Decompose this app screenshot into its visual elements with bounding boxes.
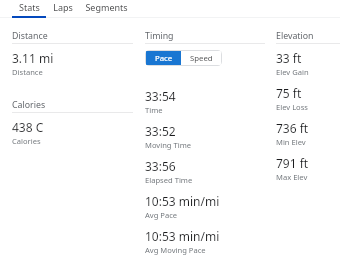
button[interactable]: 33:52 (145, 123, 192, 150)
staticText: 3.11 mi (12, 50, 54, 66)
button[interactable]: Pace (146, 51, 181, 65)
staticText: 10:53 min/mi (145, 193, 220, 209)
staticText: Pace (155, 53, 173, 64)
staticText: 75 ft (276, 85, 302, 101)
staticText: Elev Gain (276, 67, 309, 77)
staticText: Segments (85, 1, 128, 13)
staticText: Min Elev (276, 137, 306, 147)
button[interactable]: Segments (79, 0, 134, 18)
staticText: 10:53 min/mi (145, 228, 220, 244)
staticText: Elev Loss (276, 102, 308, 112)
staticText: Moving Time (145, 140, 192, 150)
button[interactable]: Laps (46, 0, 79, 18)
staticText: 736 ft (276, 120, 309, 136)
staticText: 791 ft (276, 155, 309, 171)
button[interactable]: 736 ft (276, 120, 309, 147)
staticText: Avg Pace (145, 210, 178, 220)
button[interactable]: 791 ft (276, 155, 309, 182)
staticText: Timing (145, 30, 174, 42)
button[interactable]: 3.11 mi (12, 50, 54, 77)
staticText: Time (145, 105, 163, 115)
staticText: Max Elev (276, 172, 308, 182)
button[interactable]: 75 ft (276, 85, 308, 112)
button[interactable]: 10:53 min/mi (145, 228, 220, 255)
staticText: 438 C (12, 119, 44, 135)
button[interactable]: 33:54 (145, 88, 176, 115)
button[interactable]: 438 C (12, 119, 44, 146)
button[interactable]: 33 ft (276, 50, 309, 77)
staticText: Calories (12, 136, 41, 146)
staticText: Avg Moving Pace (145, 245, 206, 255)
staticText: Distance (12, 67, 43, 77)
staticText: 33:54 (145, 88, 176, 104)
staticText: Stats (19, 1, 40, 13)
staticText: 33:56 (145, 158, 176, 174)
button[interactable]: 33:56 (145, 158, 193, 185)
staticText: Elevation (276, 30, 314, 42)
button[interactable]: Stats (12, 0, 46, 18)
staticText: Speed (190, 53, 213, 64)
button[interactable]: 10:53 min/mi (145, 193, 220, 220)
staticText: Distance (12, 30, 48, 42)
staticText: 33:52 (145, 123, 176, 139)
staticText: Calories (12, 99, 46, 111)
button[interactable]: Speed (181, 51, 221, 65)
staticText: 33 ft (276, 50, 302, 66)
staticText: Laps (53, 1, 73, 13)
staticText: Elapsed Time (145, 175, 193, 185)
